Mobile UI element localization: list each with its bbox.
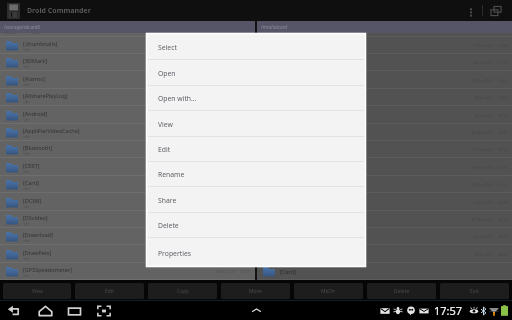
button[interactable]: Back <box>4 301 24 320</box>
staticText: [3DMark] <box>280 57 305 64</box>
button[interactable]: [AppliFierVideoCache] <box>257 124 512 141</box>
staticText: <dir> <box>23 170 31 174</box>
button[interactable]: [Android] <box>257 107 512 124</box>
staticText: /storage/sdcard0 <box>4 24 41 30</box>
button[interactable]: [DCIM] <box>257 176 512 193</box>
button[interactable]: [GPSSpeedometer] <box>0 263 255 280</box>
button[interactable]: View <box>146 112 366 137</box>
button[interactable]: Move <box>221 283 290 299</box>
button[interactable]: Open with... <box>146 86 366 111</box>
button[interactable]: Rename <box>146 162 366 187</box>
staticText: View <box>158 120 173 129</box>
button[interactable]: /storage/sdcard0 <box>0 21 255 33</box>
button[interactable]: Home <box>35 301 55 320</box>
staticText: <dir> <box>23 83 31 87</box>
staticText: Size <box>33 33 41 34</box>
button[interactable]: [Download] <box>0 228 255 245</box>
staticText: Delete <box>394 288 410 295</box>
button[interactable]: [AllsharePlayLog] <box>257 89 512 106</box>
staticText: Edit <box>105 288 114 295</box>
button[interactable]: Edit <box>75 283 144 299</box>
button[interactable]: Screenshot <box>94 301 114 320</box>
button[interactable]: [DCIM] <box>0 194 255 211</box>
button[interactable]: [3DMark] <box>257 54 512 71</box>
button[interactable]: MkDir <box>294 283 363 299</box>
button[interactable]: Switch panel view <box>483 0 509 21</box>
button[interactable]: [Alarms] <box>257 72 512 89</box>
staticText: <dir> <box>23 100 31 104</box>
button[interactable]: [DrawPets] <box>0 246 255 263</box>
button[interactable]: [Android] <box>0 107 255 124</box>
staticText: [GPSSpeedometer] <box>23 266 72 273</box>
button[interactable]: Properties <box>146 239 366 267</box>
staticText: <dir> <box>23 187 31 191</box>
button[interactable]: Copy <box>148 283 217 299</box>
button[interactable]: [Carti] <box>257 263 512 280</box>
staticText: <dir> <box>23 205 31 209</box>
button[interactable]: [CERT] <box>257 159 512 176</box>
staticText: [DrawPets] <box>23 249 52 256</box>
button[interactable]: [DrawPets] <box>257 228 512 245</box>
button[interactable]: [Carti] <box>0 176 255 193</box>
button[interactable]: [AllsharePlayLog] <box>0 89 255 106</box>
button[interactable]: View <box>3 283 71 299</box>
button[interactable]: /mnt/sdcard <box>257 21 512 33</box>
button[interactable]: [CERT] <box>0 159 255 176</box>
button[interactable]: Show navigation bar <box>246 301 266 320</box>
button[interactable]: [.thumbnails] <box>257 37 512 54</box>
button[interactable]: [AppliFierVideoCache] <box>0 124 255 141</box>
button[interactable]: More options <box>460 0 482 21</box>
staticText: <dir> <box>280 83 288 87</box>
button[interactable]: [Alarms] <box>0 72 255 89</box>
button[interactable]: Edit <box>146 137 366 162</box>
staticText: Name <box>5 33 17 34</box>
button[interactable]: Delete <box>146 213 366 238</box>
button[interactable]: Select <box>146 35 366 60</box>
button[interactable]: [3DMark] <box>0 54 255 71</box>
button[interactable]: [.thumbnails] <box>0 37 255 54</box>
button[interactable]: Open <box>146 61 366 86</box>
staticText: Open <box>158 69 176 78</box>
button[interactable]: [Bluetooth] <box>257 141 512 158</box>
button[interactable]: [GPSSpeedometer] <box>257 246 512 263</box>
staticText: [DSvideo] <box>23 214 48 221</box>
button[interactable]: Delete <box>367 283 436 299</box>
button[interactable]: [Download] <box>257 211 512 228</box>
button[interactable]: [DSvideo] <box>0 211 255 228</box>
staticText: [Carti] <box>23 179 39 186</box>
staticText: Select <box>158 43 177 52</box>
button[interactable]: Recent apps <box>64 301 84 320</box>
button[interactable]: [DSvideo] <box>257 194 512 211</box>
staticText: /mnt/sdcard <box>261 24 288 30</box>
staticText: [Android] <box>280 110 305 117</box>
button[interactable]: Share <box>146 188 366 213</box>
button[interactable]: [Bluetooth] <box>0 141 255 158</box>
